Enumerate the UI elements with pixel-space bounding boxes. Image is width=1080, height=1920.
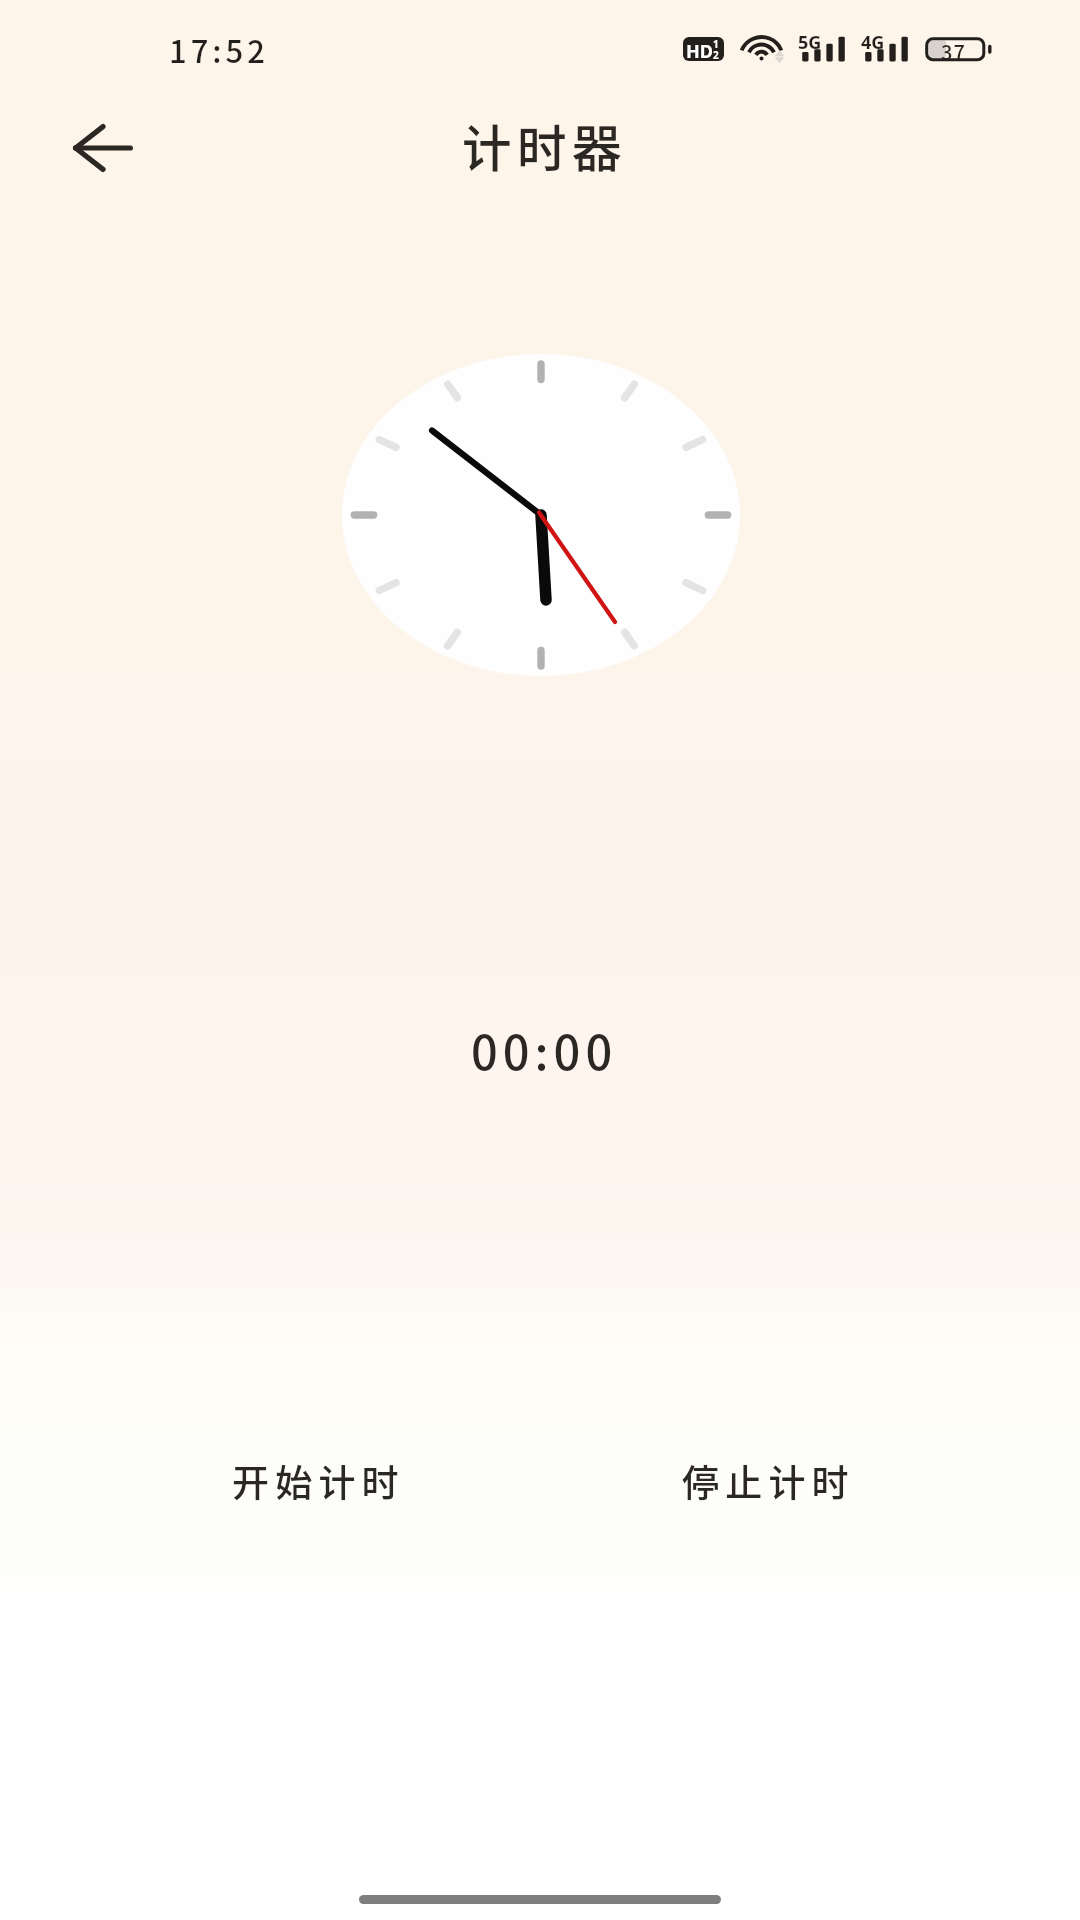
staticText: 1 <box>713 37 719 51</box>
staticText: 00:00 <box>471 1015 618 1083</box>
staticText: 计时器 <box>462 110 627 182</box>
staticText: 37 <box>941 37 966 66</box>
staticText: HD <box>686 39 713 61</box>
staticText: 2 <box>713 48 719 61</box>
button[interactable]: 开始计时 <box>210 1428 427 1534</box>
button[interactable]: 停止计时 <box>660 1428 877 1534</box>
button[interactable]: Back <box>53 104 153 192</box>
staticText: 5G <box>798 30 822 55</box>
staticText: 4G <box>861 30 885 55</box>
staticText: 开始计时 <box>232 1454 405 1508</box>
staticText: 停止计时 <box>682 1454 855 1508</box>
staticText: 17:52 <box>169 27 269 72</box>
